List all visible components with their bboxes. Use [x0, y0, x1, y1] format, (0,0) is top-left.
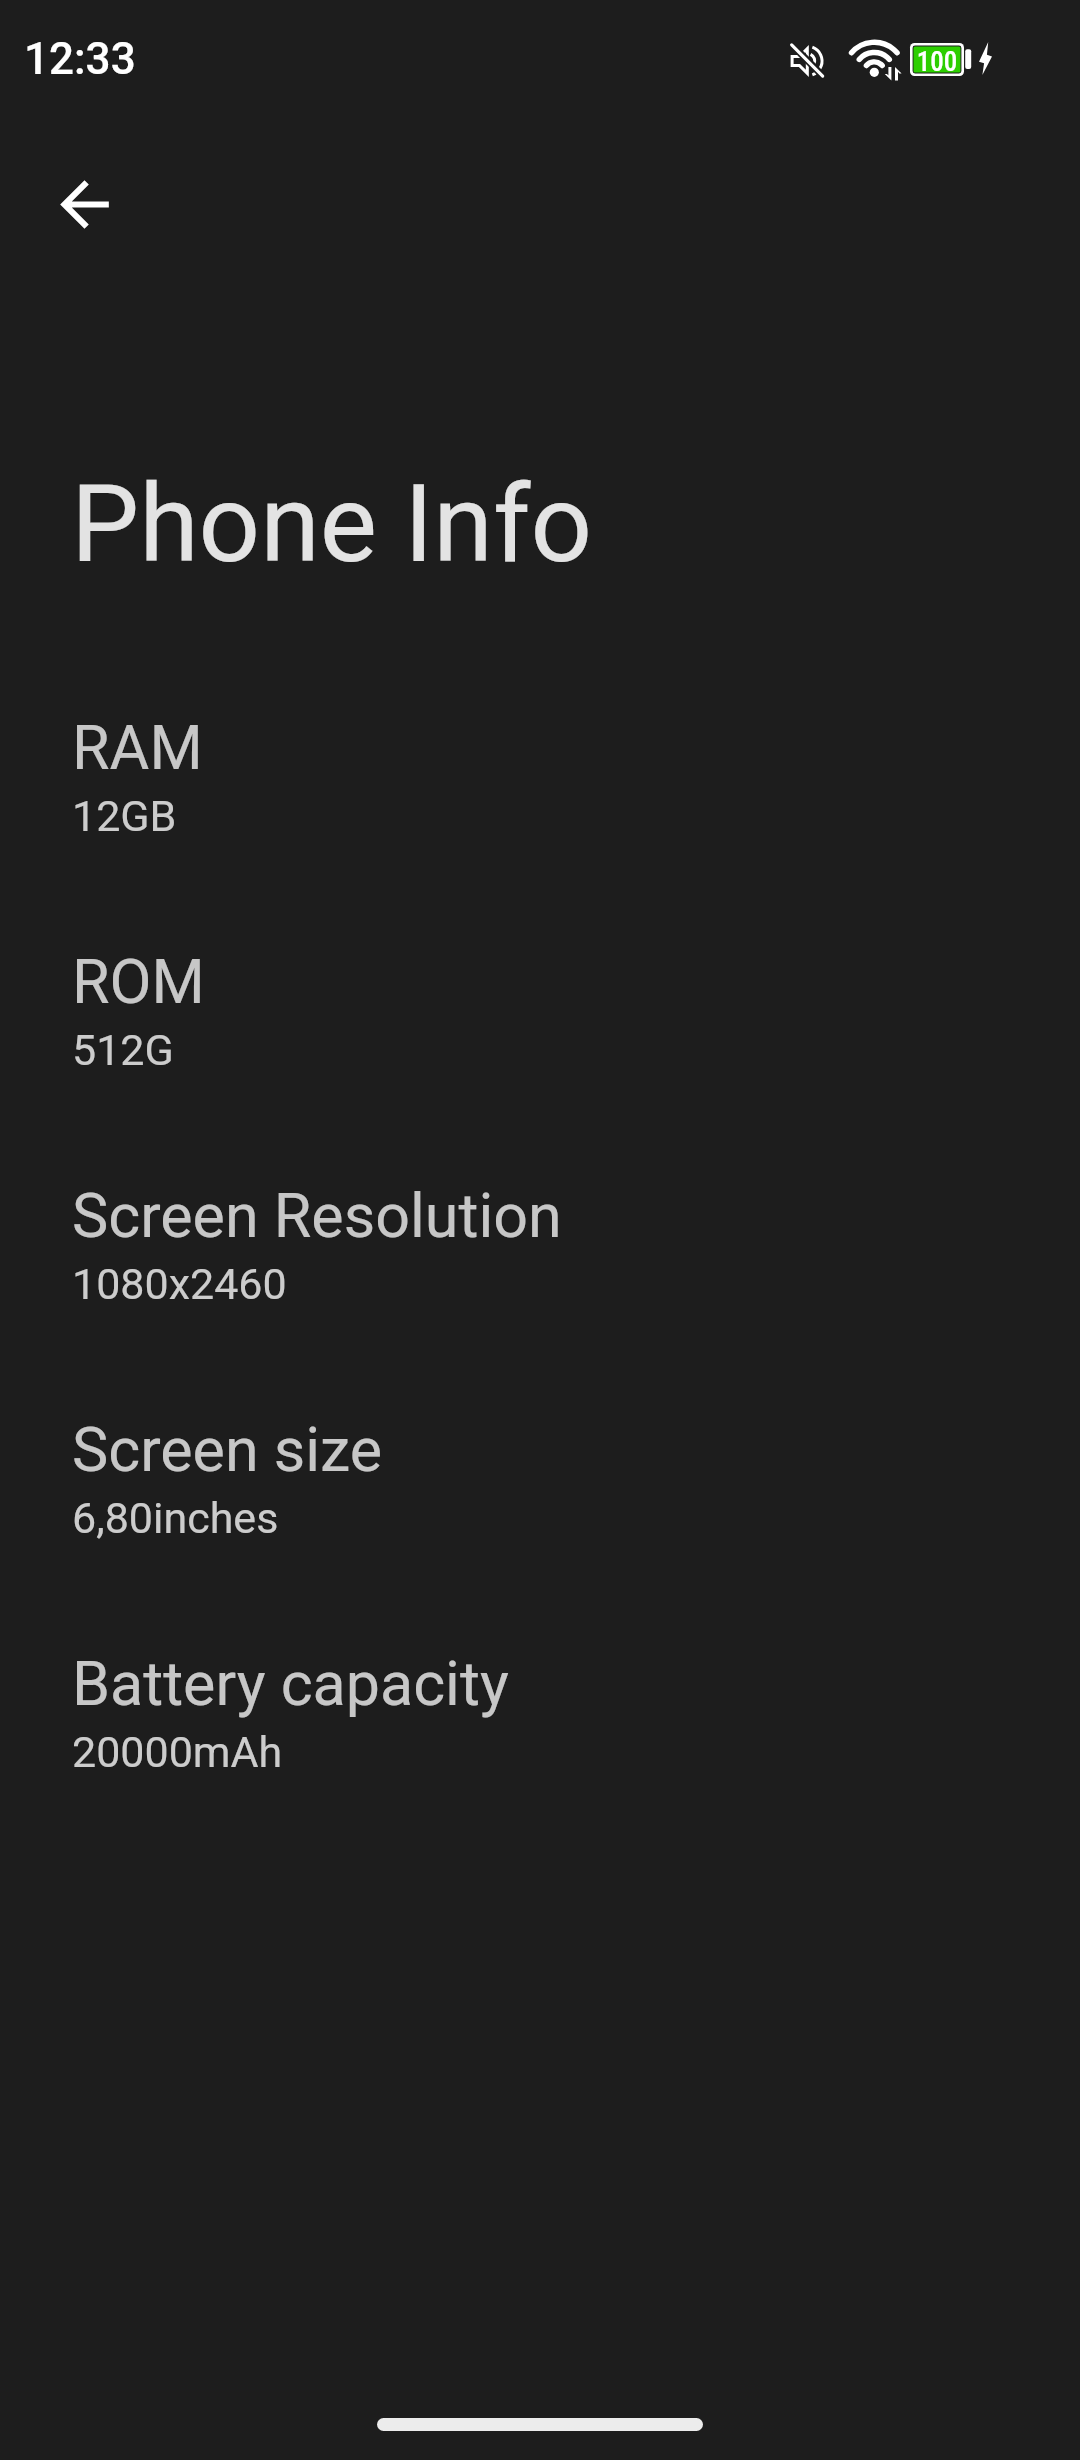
- staticText: Screen size: [72, 1414, 383, 1485]
- staticText: 512G: [72, 1025, 174, 1075]
- staticText: ROM: [72, 946, 205, 1017]
- staticText: 1080x2460: [72, 1259, 287, 1309]
- staticText: RAM: [72, 712, 203, 783]
- button[interactable]: RAM: [0, 712, 1080, 841]
- button[interactable]: Screen size: [0, 1414, 1080, 1543]
- button[interactable]: Screen Resolution: [0, 1180, 1080, 1309]
- staticText: 100: [910, 46, 964, 78]
- staticText: 6,80inches: [72, 1493, 279, 1543]
- staticText: 20000mAh: [72, 1727, 283, 1777]
- button[interactable]: Back: [36, 156, 132, 252]
- button[interactable]: ROM: [0, 946, 1080, 1075]
- staticText: Screen Resolution: [72, 1180, 562, 1251]
- other: Charging: [979, 42, 992, 75]
- staticText: Battery capacity: [72, 1648, 509, 1719]
- button[interactable]: Battery capacity: [0, 1648, 1080, 1777]
- staticText: 12:33: [24, 33, 136, 85]
- other: Wi-Fi connected: [849, 37, 904, 81]
- staticText: Phone Info: [71, 461, 593, 588]
- other: Ringer silent: [788, 42, 826, 80]
- other: Battery 100 percent: [910, 43, 972, 76]
- staticText: 12GB: [72, 791, 177, 841]
